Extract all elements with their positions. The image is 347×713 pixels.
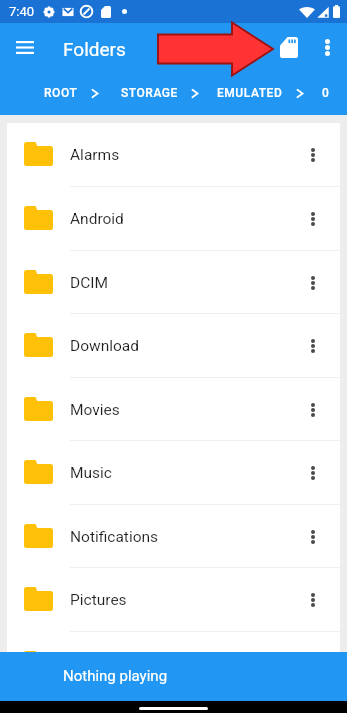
button[interactable]: More options for Android xyxy=(293,199,333,239)
staticText: Alarms xyxy=(70,146,120,164)
button[interactable]: STORAGE xyxy=(121,79,178,107)
button[interactable]: Nothing playing xyxy=(0,652,347,701)
button[interactable]: EMULATED xyxy=(217,79,283,107)
button[interactable]: More options xyxy=(309,29,345,65)
button[interactable]: ROOT xyxy=(44,79,78,107)
button[interactable]: Alarms xyxy=(7,123,340,187)
staticText: Pictures xyxy=(70,591,127,609)
staticText: Music xyxy=(70,464,112,482)
button[interactable]: Open navigation drawer xyxy=(8,31,41,64)
staticText: DCIM xyxy=(70,274,109,292)
button[interactable]: More options for Alarms xyxy=(293,135,333,175)
button[interactable]: Download xyxy=(7,314,340,378)
button[interactable]: More options for Movies xyxy=(293,390,333,430)
staticText: Folders xyxy=(63,38,126,60)
staticText: Download xyxy=(70,337,140,355)
button[interactable]: 0 xyxy=(322,79,330,107)
button[interactable]: More options for DCIM xyxy=(293,263,333,303)
button[interactable]: Podcasts xyxy=(7,632,340,652)
staticText: Notifications xyxy=(70,528,159,546)
button[interactable]: More options for Pictures xyxy=(293,580,333,620)
staticText: Nothing playing xyxy=(63,667,168,685)
button[interactable]: More options for Music xyxy=(293,453,333,493)
button[interactable]: More options for Download xyxy=(293,326,333,366)
staticText: EMULATED xyxy=(217,86,283,100)
button[interactable]: DCIM xyxy=(7,251,340,314)
staticText: Movies xyxy=(70,401,120,419)
button[interactable]: Movies xyxy=(7,378,340,441)
staticText: Android xyxy=(70,210,124,228)
button[interactable]: Android xyxy=(7,187,340,251)
staticText: ROOT xyxy=(44,86,78,100)
button[interactable]: More options for Notifications xyxy=(293,517,333,557)
button[interactable]: SD card storage xyxy=(269,27,309,67)
staticText: STORAGE xyxy=(121,86,178,100)
staticText: 0 xyxy=(322,86,330,100)
button[interactable]: Pictures xyxy=(7,568,340,632)
button[interactable]: Notifications xyxy=(7,505,340,568)
button[interactable]: Music xyxy=(7,441,340,505)
staticText: 7:40 xyxy=(9,4,35,19)
